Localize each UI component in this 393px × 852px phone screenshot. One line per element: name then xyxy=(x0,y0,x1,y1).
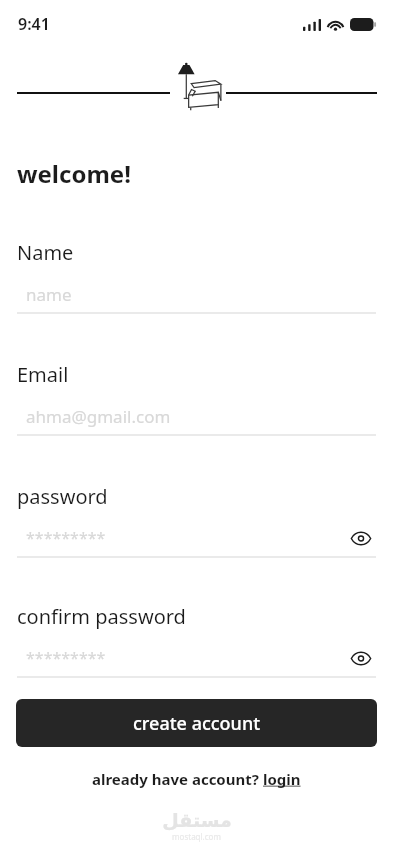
staticText: mostaql.com xyxy=(172,831,221,842)
staticText: 9:41 xyxy=(18,13,50,35)
staticText: welcome! xyxy=(17,157,131,190)
button[interactable]: login xyxy=(263,769,301,789)
staticText: confirm password xyxy=(17,603,186,630)
staticText: already have account? xyxy=(92,769,263,789)
staticText: name xyxy=(26,283,72,306)
staticText: مستقل xyxy=(162,809,232,831)
button[interactable]: Show password xyxy=(346,523,376,553)
staticText: create account xyxy=(133,711,261,736)
button[interactable]: create account xyxy=(16,699,377,747)
button[interactable]: ********* xyxy=(17,523,376,553)
staticText: Email xyxy=(17,361,69,388)
button[interactable]: ********* xyxy=(17,643,376,673)
staticText: login xyxy=(263,769,301,789)
staticText: ********* xyxy=(26,527,106,549)
button[interactable]: name xyxy=(17,279,376,309)
staticText: ahma@gmail.com xyxy=(26,405,171,428)
button[interactable]: Show password xyxy=(346,643,376,673)
staticText: Name xyxy=(17,239,74,266)
staticText: ********* xyxy=(26,647,106,669)
button[interactable]: ahma@gmail.com xyxy=(17,401,376,431)
staticText: password xyxy=(17,483,108,510)
